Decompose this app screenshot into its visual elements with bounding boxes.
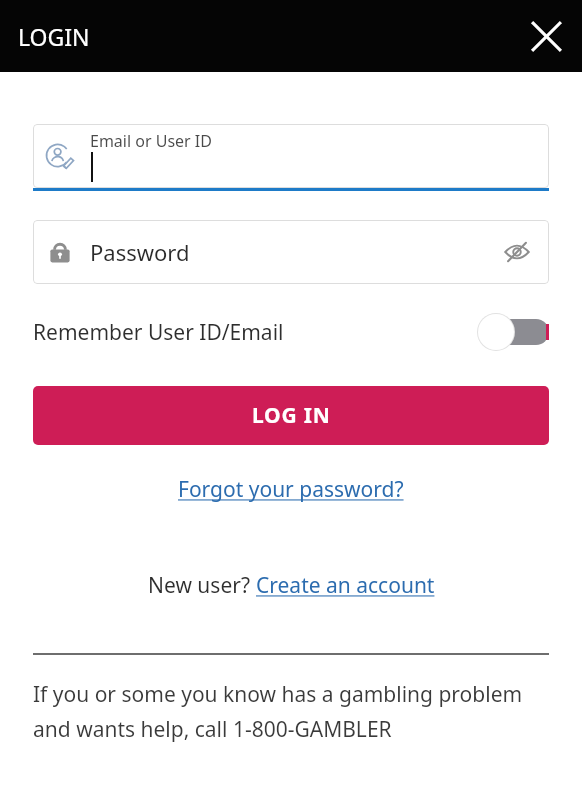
button[interactable]: Create an account bbox=[256, 571, 435, 600]
staticText: Remember User ID/Email bbox=[33, 318, 284, 347]
staticText: Email or User ID bbox=[90, 130, 212, 152]
staticText: Forgot your password? bbox=[178, 475, 404, 504]
staticText: LOGIN bbox=[18, 21, 90, 52]
button[interactable]: Email or User ID bbox=[33, 124, 549, 191]
button[interactable]: Show password bbox=[497, 232, 537, 272]
button[interactable]: Remember User ID/Email bbox=[33, 308, 549, 356]
button[interactable]: Close bbox=[524, 14, 568, 58]
button[interactable]: Password bbox=[33, 220, 549, 284]
button[interactable]: LOG IN bbox=[33, 386, 549, 445]
staticText: If you or some you know has a gambling p… bbox=[33, 680, 549, 743]
staticText: Password bbox=[90, 237, 190, 267]
button[interactable]: Forgot your password? bbox=[170, 471, 412, 508]
staticText: LOG IN bbox=[252, 401, 331, 430]
staticText: New user? bbox=[148, 571, 256, 600]
staticText: Create an account bbox=[256, 571, 435, 600]
